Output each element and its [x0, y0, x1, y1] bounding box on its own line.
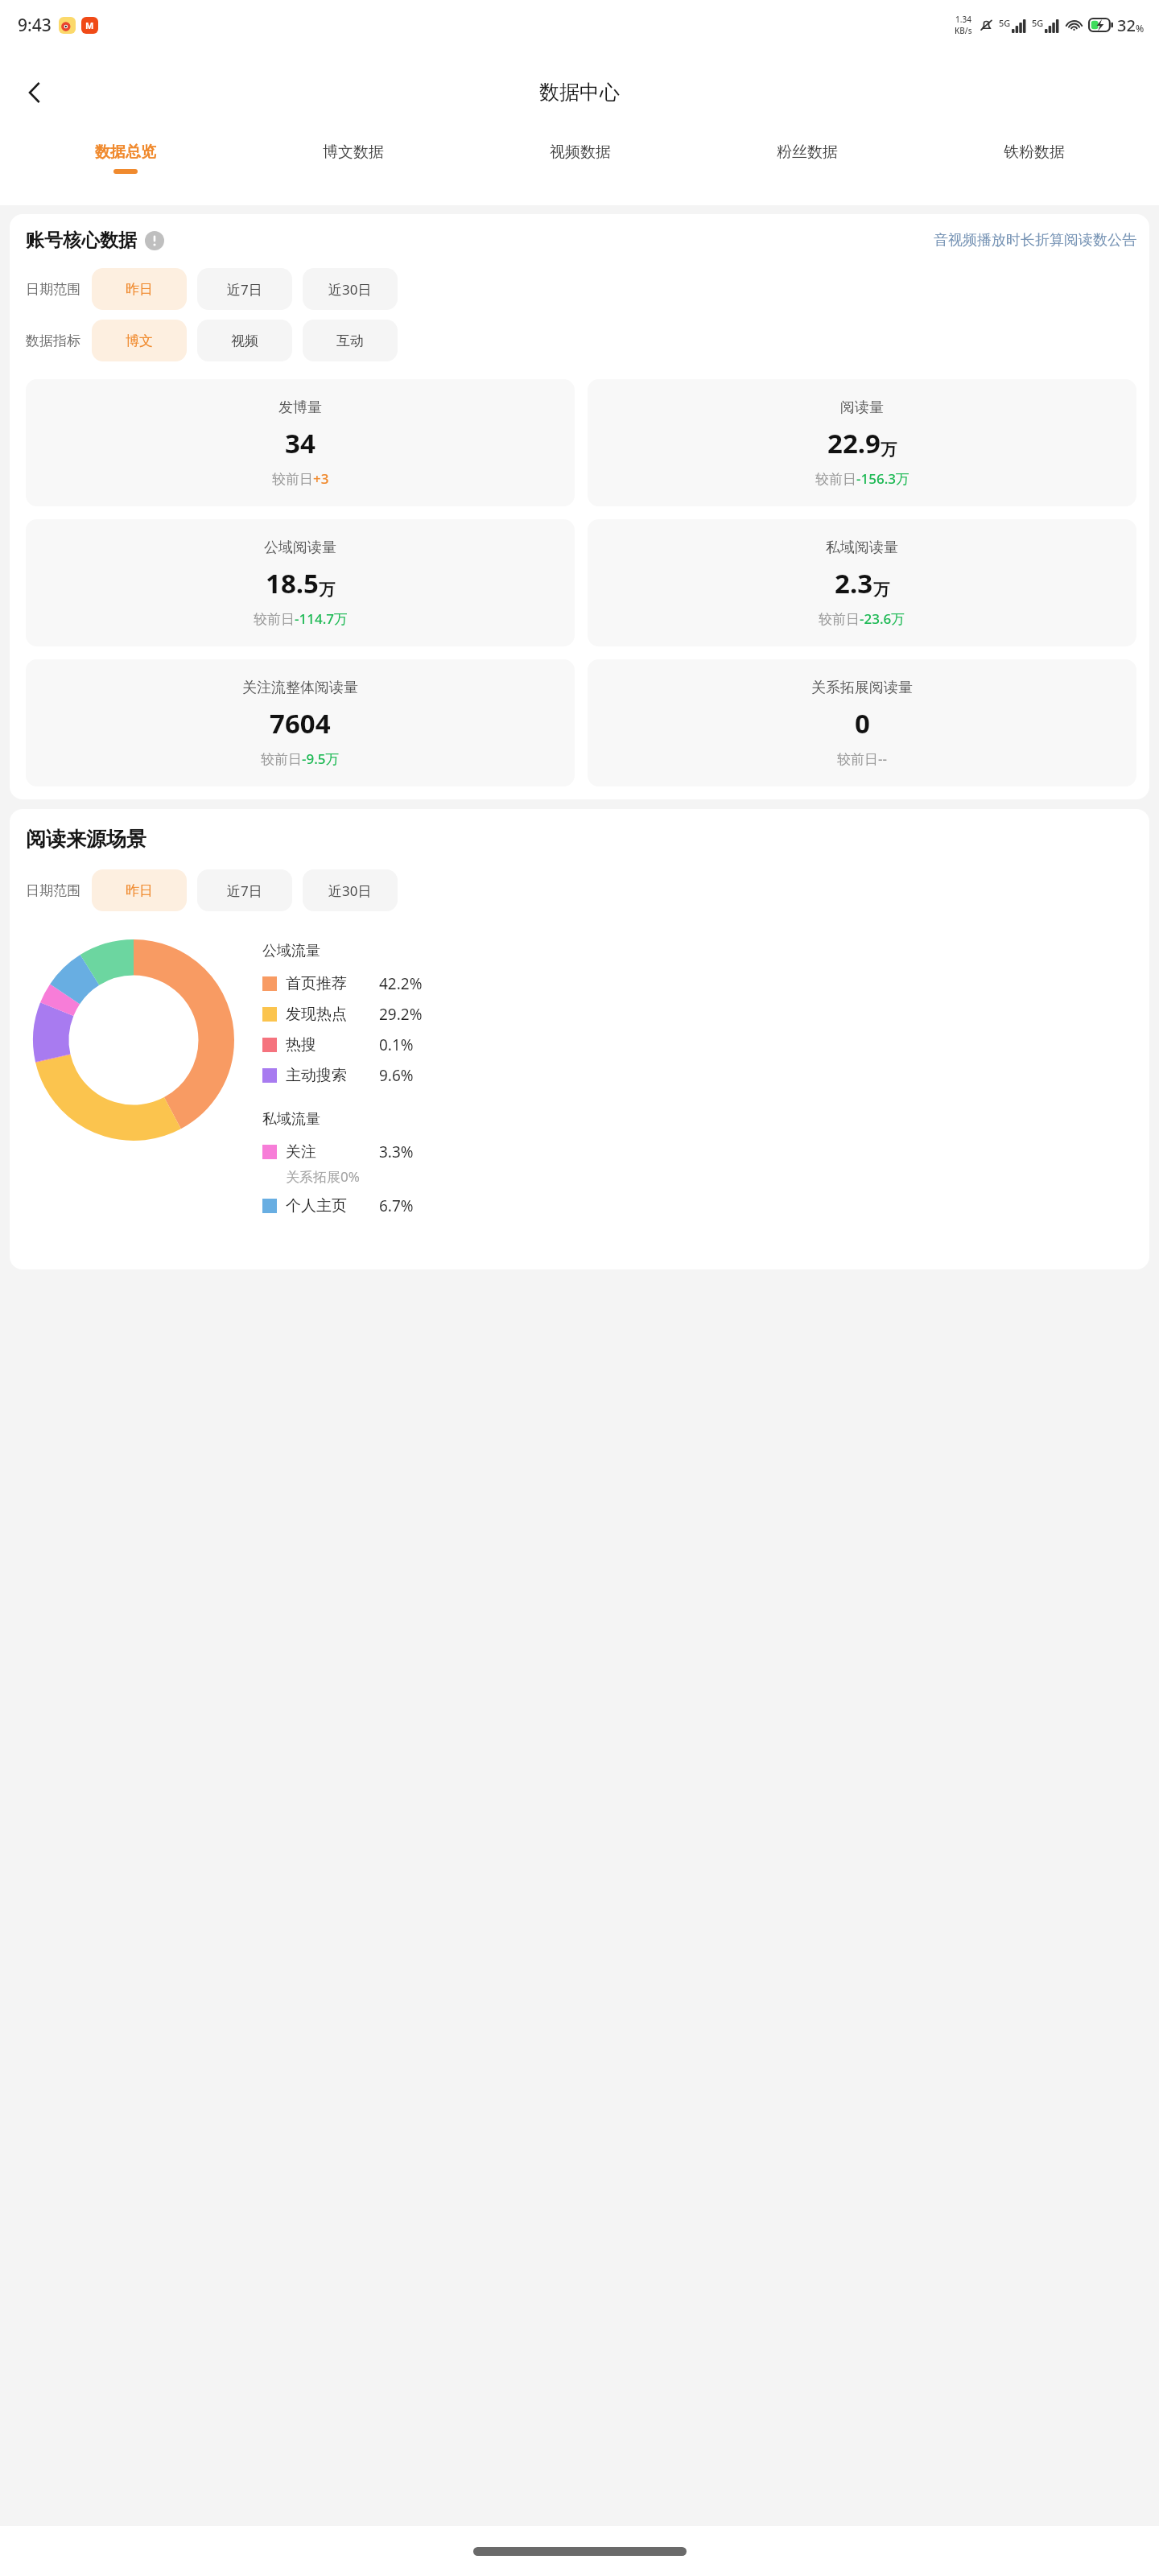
staticText: 18.5: [266, 565, 319, 601]
staticText: 昨日: [126, 882, 153, 899]
button[interactable]: 近7日: [197, 869, 292, 911]
staticText: 阅读来源场景: [26, 827, 146, 852]
staticText: 视频数据: [550, 142, 611, 162]
staticText: 32: [1117, 14, 1136, 36]
staticText: 较前日-9.5万: [261, 749, 340, 768]
staticText: 万: [873, 580, 889, 600]
staticText: 近30日: [328, 881, 372, 900]
staticText: 9.6%: [379, 1065, 414, 1086]
button[interactable]: 博文数据: [239, 134, 467, 205]
staticText: 万: [881, 440, 897, 460]
staticText: 粉丝数据: [777, 142, 838, 162]
button[interactable]: 首页推荐: [262, 973, 1136, 994]
staticText: 22.9: [827, 425, 881, 461]
staticText: 热搜: [286, 1035, 379, 1055]
staticText: 日期范围: [26, 281, 80, 298]
staticText: 音视频播放时长折算阅读数公告: [934, 231, 1136, 250]
button[interactable]: 近30日: [303, 268, 398, 310]
staticText: 较前日--: [837, 749, 887, 768]
staticText: 博文数据: [323, 142, 384, 162]
staticText: 近7日: [227, 881, 262, 900]
staticText: 较前日-156.3万: [815, 469, 909, 488]
staticText: 29.2%: [379, 1004, 423, 1025]
button[interactable]: 关注流整体阅读量: [26, 659, 575, 786]
staticText: 42.2%: [379, 973, 423, 994]
staticText: 3.3%: [379, 1141, 414, 1162]
button[interactable]: 返回: [8, 66, 61, 119]
staticText: %: [1136, 22, 1145, 35]
staticText: 万: [319, 580, 335, 600]
staticText: 互动: [336, 332, 364, 349]
button[interactable]: 个人主页: [262, 1195, 1136, 1216]
button[interactable]: 铁粉数据: [921, 134, 1148, 205]
staticText: 账号核心数据: [26, 229, 137, 252]
staticText: 博文: [126, 332, 153, 349]
staticText: 近7日: [227, 280, 262, 299]
staticText: 昨日: [126, 281, 153, 298]
button[interactable]: 近30日: [303, 869, 398, 911]
button[interactable]: 数据总览: [11, 134, 239, 205]
button[interactable]: 互动: [303, 320, 398, 361]
button[interactable]: 关系拓展阅读量: [588, 659, 1136, 786]
staticText: 首页推荐: [286, 974, 379, 993]
button[interactable]: 粉丝数据: [694, 134, 921, 205]
button[interactable]: 博文: [92, 320, 187, 361]
staticText: 关系拓展阅读量: [811, 679, 913, 697]
button[interactable]: 公域阅读量: [26, 519, 575, 646]
staticText: 数据中心: [539, 80, 620, 105]
staticText: 5G: [1032, 17, 1044, 29]
staticText: 7604: [270, 705, 331, 741]
button[interactable]: 说明: [144, 230, 165, 251]
staticText: 数据总览: [95, 142, 156, 162]
staticText: 发现热点: [286, 1005, 379, 1024]
button[interactable]: 热搜: [262, 1034, 1136, 1055]
staticText: 关注: [286, 1142, 379, 1162]
staticText: 9:43: [18, 14, 52, 37]
staticText: 关注流整体阅读量: [242, 679, 358, 697]
button[interactable]: 关注: [262, 1141, 1136, 1162]
button[interactable]: 发博量: [26, 379, 575, 506]
button[interactable]: 主动搜索: [262, 1065, 1136, 1086]
staticText: 5G: [999, 17, 1011, 29]
button[interactable]: 视频数据: [467, 134, 694, 205]
staticText: 视频: [231, 332, 258, 349]
staticText: 日期范围: [26, 882, 80, 899]
staticText: 6.7%: [379, 1195, 414, 1216]
staticText: 公域阅读量: [264, 539, 336, 557]
button[interactable]: 昨日: [92, 268, 187, 310]
staticText: 个人主页: [286, 1196, 379, 1216]
button[interactable]: 昨日: [92, 869, 187, 911]
button[interactable]: 视频: [197, 320, 292, 361]
button[interactable]: 近7日: [197, 268, 292, 310]
staticText: 2.3: [835, 565, 873, 601]
staticText: 阅读量: [840, 398, 884, 417]
staticText: 近30日: [328, 280, 372, 299]
staticText: 关系拓展0%: [286, 1167, 360, 1186]
staticText: 公域流量: [262, 942, 320, 960]
staticText: 私域流量: [262, 1110, 320, 1129]
staticText: 私域阅读量: [826, 539, 898, 557]
staticText: 1.34: [955, 14, 971, 25]
staticText: 铁粉数据: [1004, 142, 1065, 162]
staticText: 数据指标: [26, 332, 80, 349]
staticText: 主动搜索: [286, 1066, 379, 1085]
staticText: 发博量: [278, 398, 322, 417]
button[interactable]: 音视频播放时长折算阅读数公告: [934, 231, 1136, 250]
staticText: 0.1%: [379, 1034, 414, 1055]
staticText: KB/s: [955, 25, 972, 36]
staticText: 较前日+3: [272, 469, 329, 488]
staticText: 0: [855, 705, 870, 741]
staticText: 34: [285, 425, 316, 461]
button[interactable]: 阅读量: [588, 379, 1136, 506]
button[interactable]: 发现热点: [262, 1004, 1136, 1025]
staticText: 较前日-114.7万: [254, 609, 348, 628]
button[interactable]: 私域阅读量: [588, 519, 1136, 646]
staticText: 较前日-23.6万: [819, 609, 905, 628]
staticText: M: [85, 19, 94, 31]
